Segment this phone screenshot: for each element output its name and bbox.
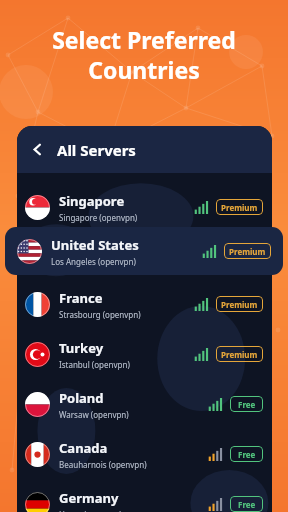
staticText: Free	[238, 499, 256, 510]
button[interactable]: Singapore	[17, 182, 272, 232]
staticText: Canada	[59, 439, 108, 457]
staticText: Singapore	[59, 192, 125, 210]
staticText: Free	[238, 399, 256, 410]
staticText: All Servers	[57, 140, 136, 160]
button[interactable]: Poland	[17, 379, 272, 429]
staticText: Premium	[221, 349, 258, 360]
button[interactable]: France	[17, 279, 272, 329]
staticText: Free	[238, 449, 256, 460]
staticText: Premium	[221, 202, 258, 213]
button[interactable]: Back	[17, 126, 272, 173]
button[interactable]: United States	[5, 227, 283, 275]
staticText: Select Preferred Countries	[10, 24, 278, 86]
button[interactable]: Canada	[17, 429, 272, 479]
staticText: United States	[51, 236, 139, 254]
staticText: Strasbourg (openvpn)	[59, 309, 141, 320]
staticText: Singapore (openvpn)	[59, 212, 138, 223]
staticText: Premium	[221, 299, 258, 310]
staticText: Poland	[59, 389, 104, 407]
staticText: Istanbul (openvpn)	[59, 359, 130, 370]
staticText: Turkey	[59, 339, 104, 357]
staticText: Los Angeles (openvpn)	[51, 256, 136, 267]
staticText: Hesse (openvpn)	[59, 509, 122, 512]
staticText: Premium	[229, 246, 266, 257]
staticText: France	[59, 289, 103, 307]
staticText: Germany	[59, 489, 119, 507]
staticText: Warsaw (openvpn)	[59, 409, 129, 420]
button[interactable]: Germany	[17, 479, 272, 512]
button[interactable]: Turkey	[17, 329, 272, 379]
staticText: Beauharnois (openvpn)	[59, 459, 147, 470]
other: Back	[29, 141, 46, 158]
